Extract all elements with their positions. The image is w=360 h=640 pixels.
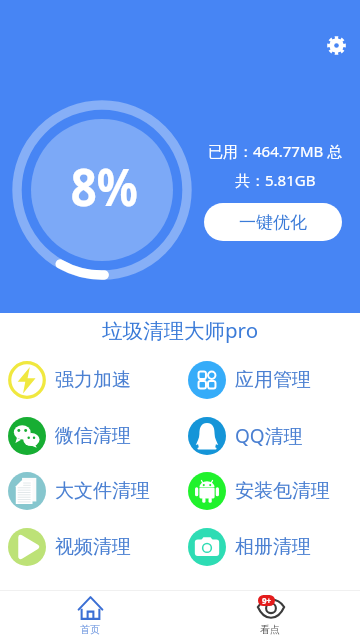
button[interactable]: 微信清理 bbox=[8, 417, 178, 455]
button[interactable]: 强力加速 bbox=[8, 361, 178, 399]
button[interactable]: 9+ bbox=[180, 591, 360, 636]
button[interactable]: 大文件清理 bbox=[8, 472, 178, 510]
staticText: 微信清理 bbox=[55, 424, 131, 448]
staticText: 强力加速 bbox=[55, 368, 131, 392]
staticText: 垃圾清理大师pro bbox=[0, 316, 360, 344]
staticText: 9+ bbox=[262, 595, 272, 606]
button[interactable]: 安装包清理 bbox=[188, 472, 358, 510]
button[interactable]: QQ清理 bbox=[188, 417, 358, 455]
staticText: 安装包清理 bbox=[235, 479, 330, 503]
button[interactable]: 一键优化 bbox=[204, 203, 342, 241]
button[interactable]: 视频清理 bbox=[8, 528, 178, 566]
staticText: 相册清理 bbox=[235, 535, 311, 559]
staticText: 看点 bbox=[260, 623, 280, 636]
staticText: 共：5.81GB bbox=[235, 170, 316, 190]
staticText: 首页 bbox=[80, 623, 100, 636]
staticText: 已用：464.77MB 总 bbox=[208, 141, 343, 161]
button[interactable]: 相册清理 bbox=[188, 528, 358, 566]
staticText: QQ清理 bbox=[235, 423, 303, 449]
staticText: 一键优化 bbox=[239, 212, 307, 233]
button[interactable]: Settings bbox=[320, 29, 352, 61]
staticText: 大文件清理 bbox=[55, 479, 150, 503]
staticText: 应用管理 bbox=[235, 368, 311, 392]
staticText: 8% bbox=[71, 150, 138, 221]
button[interactable]: 应用管理 bbox=[188, 361, 358, 399]
button[interactable]: 首页 bbox=[0, 591, 180, 636]
staticText: 视频清理 bbox=[55, 535, 131, 559]
